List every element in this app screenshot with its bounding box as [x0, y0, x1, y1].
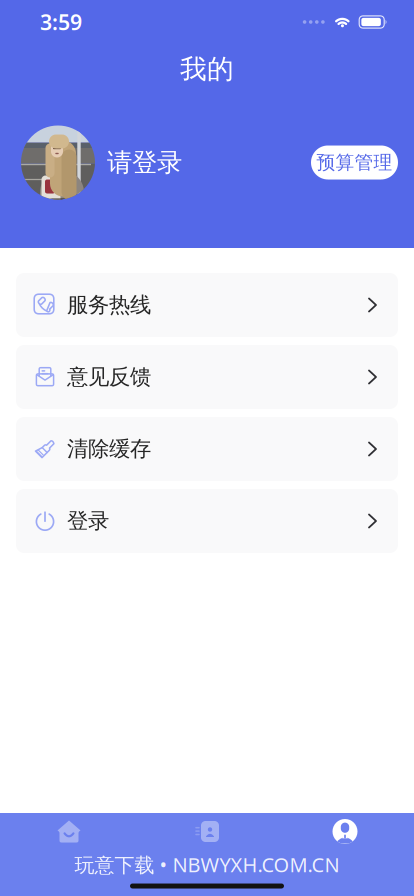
button[interactable]: 首页: [0, 809, 138, 853]
button[interactable]: 登录: [16, 489, 398, 553]
button[interactable]: 服务热线: [16, 273, 398, 337]
staticText: 3:59: [40, 8, 82, 36]
button[interactable]: 清除缓存: [16, 417, 398, 481]
button[interactable]: 通讯录: [138, 809, 276, 853]
button[interactable]: 意见反馈: [16, 345, 398, 409]
staticText: 请登录: [107, 147, 182, 178]
staticText: 我的: [180, 53, 234, 85]
button[interactable]: 我的: [276, 809, 414, 853]
staticText: 清除缓存: [67, 436, 151, 462]
staticText: 服务热线: [67, 292, 151, 318]
staticText: 意见反馈: [67, 364, 151, 390]
staticText: 预算管理: [316, 151, 392, 174]
button[interactable]: 预算管理: [311, 145, 398, 179]
staticText: 玩意下载 • NBWYXH.COM.CN: [74, 851, 339, 878]
staticText: 登录: [67, 508, 109, 534]
